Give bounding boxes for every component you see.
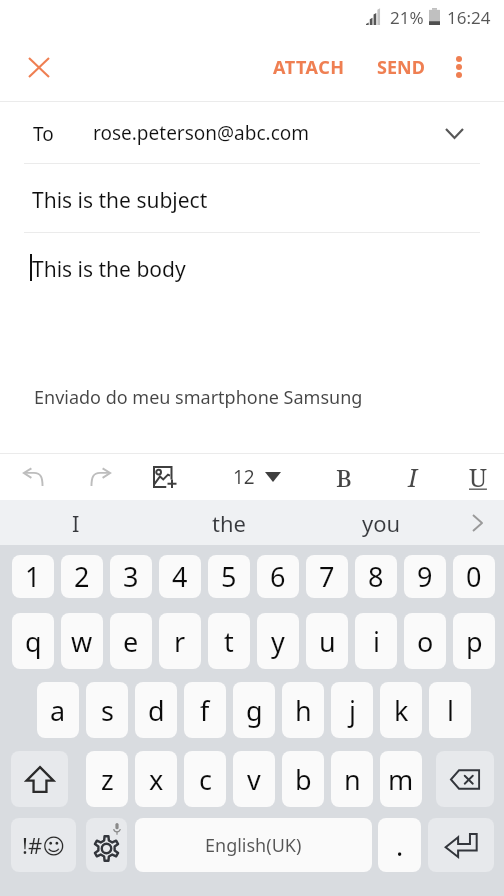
staticText: i [373, 623, 380, 660]
button[interactable]: w [61, 613, 103, 669]
button[interactable]: Symbols and emoji [11, 818, 76, 872]
button[interactable]: p [453, 613, 495, 669]
staticText: c [199, 761, 212, 798]
staticText: 16:24 [447, 6, 491, 29]
button[interactable]: 7 [306, 555, 348, 598]
button[interactable]: e [110, 613, 152, 669]
staticText: rose.peterson@abc.com [93, 120, 310, 146]
button[interactable]: 1 [12, 555, 54, 598]
staticText: n [344, 761, 361, 798]
button[interactable]: This is the subject [0, 164, 504, 232]
staticText: d [148, 692, 165, 729]
button[interactable]: 6 [257, 555, 299, 598]
button[interactable]: j [331, 682, 373, 738]
staticText: the [212, 508, 246, 538]
button[interactable]: k [380, 682, 422, 738]
staticText: q [25, 623, 42, 660]
button[interactable]: 0 [453, 555, 495, 598]
button[interactable]: u [306, 613, 348, 669]
button[interactable]: 3 [110, 555, 152, 598]
staticText: I [72, 508, 80, 538]
button[interactable]: b [282, 751, 324, 807]
button[interactable]: the [152, 500, 305, 545]
staticText: SEND [377, 55, 425, 80]
button[interactable]: More options [435, 43, 483, 91]
button[interactable]: s [86, 682, 128, 738]
button[interactable]: Keyboard settings [86, 818, 127, 872]
staticText: k [394, 692, 409, 729]
button[interactable]: . [378, 818, 421, 872]
button[interactable]: x [135, 751, 177, 807]
button[interactable]: i [355, 613, 397, 669]
button[interactable]: l [429, 682, 471, 738]
button[interactable]: 2 [61, 555, 103, 598]
button[interactable]: Redo [77, 454, 123, 500]
button[interactable]: Close [15, 43, 63, 91]
staticText: t [224, 623, 234, 660]
staticText: z [101, 761, 114, 798]
button[interactable]: Shift [11, 751, 68, 807]
staticText: o [417, 623, 434, 660]
staticText: 3 [123, 558, 139, 595]
button[interactable]: To [0, 102, 504, 163]
button[interactable]: Expand recipients [430, 109, 478, 157]
staticText: v [247, 761, 261, 798]
button[interactable]: a [37, 682, 79, 738]
staticText: p [466, 623, 483, 660]
button[interactable]: n [331, 751, 373, 807]
button[interactable]: m [380, 751, 422, 807]
button[interactable]: Underline [455, 454, 501, 500]
button[interactable]: g [233, 682, 275, 738]
button[interactable]: t [208, 613, 250, 669]
button[interactable]: Bold [321, 454, 367, 500]
staticText: !#☺ [22, 830, 66, 860]
button[interactable]: 4 [159, 555, 201, 598]
button[interactable]: f [184, 682, 226, 738]
staticText: h [295, 692, 312, 729]
button[interactable]: Backspace [436, 751, 494, 807]
button[interactable]: you [305, 500, 458, 545]
button[interactable]: Insert image [141, 454, 187, 500]
staticText: . [396, 827, 404, 864]
staticText: This is the subject [32, 186, 208, 215]
button[interactable]: o [404, 613, 446, 669]
staticText: w [71, 623, 93, 660]
button[interactable]: 9 [404, 555, 446, 598]
staticText: This is the body [32, 255, 186, 284]
staticText: 2 [74, 558, 90, 595]
staticText: x [149, 761, 164, 798]
staticText: U [469, 460, 487, 494]
button[interactable]: This is the body [0, 233, 504, 301]
button[interactable]: v [233, 751, 275, 807]
button[interactable]: Enter [428, 818, 494, 872]
button[interactable]: h [282, 682, 324, 738]
button[interactable]: ATTACH [262, 44, 356, 90]
button[interactable]: c [184, 751, 226, 807]
staticText: m [388, 761, 414, 798]
button[interactable]: Undo [10, 454, 56, 500]
staticText: 6 [270, 558, 286, 595]
button[interactable]: English(UK) [135, 818, 372, 872]
button[interactable]: d [135, 682, 177, 738]
staticText: j [349, 692, 356, 729]
button[interactable]: SEND [366, 44, 436, 90]
button[interactable]: z [86, 751, 128, 807]
staticText: 4 [172, 558, 188, 595]
staticText: 7 [319, 558, 335, 595]
button[interactable]: More suggestions [458, 500, 504, 545]
staticText: English(UK) [205, 833, 302, 858]
button[interactable]: Font size [221, 454, 293, 500]
staticText: b [295, 761, 312, 798]
staticText: I [408, 460, 418, 494]
staticText: u [319, 623, 336, 660]
staticText: Enviado do meu smartphone Samsung [34, 385, 363, 410]
button[interactable]: 8 [355, 555, 397, 598]
button[interactable]: r [159, 613, 201, 669]
button[interactable]: y [257, 613, 299, 669]
staticText: 8 [368, 558, 384, 595]
button[interactable]: Italic [390, 454, 436, 500]
staticText: a [50, 692, 66, 729]
button[interactable]: 5 [208, 555, 250, 598]
button[interactable]: I [0, 500, 152, 545]
button[interactable]: q [12, 613, 54, 669]
